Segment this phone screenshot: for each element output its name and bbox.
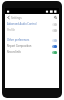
button[interactable]: Other preferences — [5, 37, 59, 43]
staticText: Advanced Audio Control — [7, 22, 37, 26]
button[interactable]: Search — [53, 15, 58, 20]
staticText: Record info — [7, 50, 21, 54]
staticText: Profile — [7, 28, 15, 32]
staticText: Settings — [11, 16, 22, 20]
button[interactable]: Toggle — [52, 29, 57, 32]
button[interactable]: Profile — [5, 27, 59, 33]
button[interactable]: Toggle — [52, 39, 57, 42]
button[interactable]: Toggle — [52, 23, 57, 26]
button[interactable]: Toggle — [52, 45, 57, 48]
button[interactable]: Report Composition — [5, 43, 59, 49]
staticText: Report Composition — [7, 44, 32, 48]
button[interactable]: Advanced Audio Control — [5, 21, 59, 27]
button[interactable]: Record info — [5, 49, 59, 55]
staticText: Other preferences — [7, 38, 30, 42]
button[interactable]: Navigate up — [6, 15, 11, 20]
button[interactable]: Toggle — [52, 51, 57, 54]
